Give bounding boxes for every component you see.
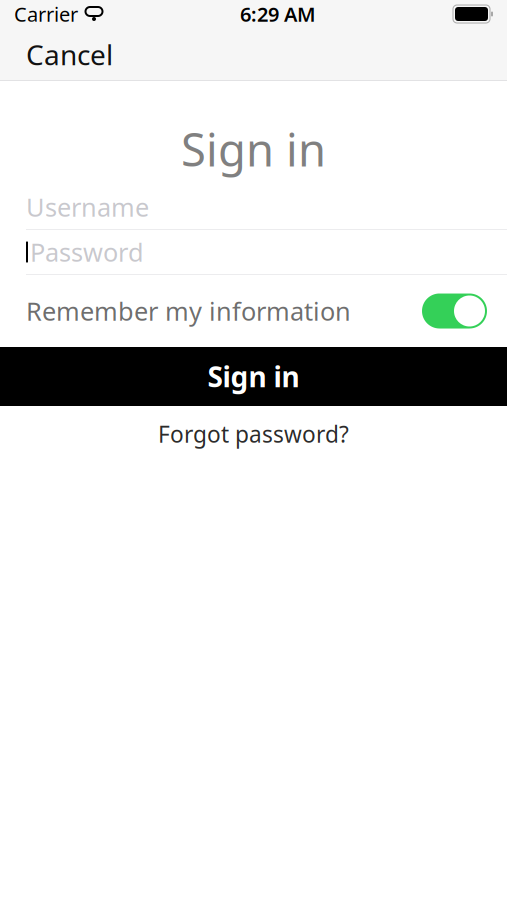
staticText: Password (30, 235, 144, 269)
button[interactable]: Sign in (0, 347, 507, 406)
staticText: Sign in (181, 119, 326, 179)
staticText: Sign in (207, 358, 299, 395)
button[interactable]: Remember my information (0, 275, 507, 347)
staticText: Remember my information (26, 294, 351, 328)
staticText: 6:29 AM (240, 1, 316, 27)
staticText: Carrier (14, 1, 78, 27)
staticText: Cancel (26, 36, 113, 73)
button[interactable]: Forgot password? (0, 406, 507, 462)
button[interactable]: Cancel (16, 28, 123, 81)
staticText: Username (26, 190, 149, 224)
staticText: Forgot password? (158, 419, 349, 449)
